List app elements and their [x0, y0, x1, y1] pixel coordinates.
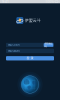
staticText: 请输入手机号 [8, 43, 20, 46]
staticText: 登 录 [26, 56, 33, 60]
staticText: 100% [45, 0, 54, 4]
staticText: 请输入验证码 [8, 49, 20, 52]
staticText: 9:41 [2, 0, 9, 4]
button[interactable]: 登 录 [6, 56, 54, 60]
staticText: 获取验证码 [44, 42, 52, 48]
button[interactable]: 获取验证码 [44, 43, 53, 47]
staticText: 伊盟云斗 [25, 18, 41, 23]
